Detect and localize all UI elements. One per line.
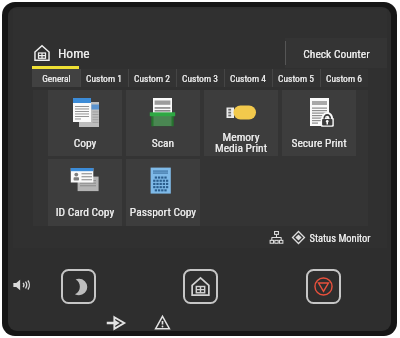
staticText: Copy	[48, 136, 122, 149]
staticText: Passport Copy	[126, 205, 200, 218]
button[interactable]: Passport Copy	[126, 159, 200, 226]
button[interactable]: Memory Media Print	[204, 90, 278, 156]
button[interactable]: Status Monitor	[292, 231, 387, 244]
staticText: Memory Media Print	[204, 130, 278, 155]
button[interactable]: Home	[183, 269, 218, 304]
button[interactable]: Custom 3	[176, 69, 224, 87]
staticText: Check Counter	[303, 47, 370, 60]
staticText: Scan	[126, 136, 200, 149]
button[interactable]: Copy	[48, 90, 122, 156]
button[interactable]: Custom 1	[80, 69, 128, 87]
staticText: ID Card Copy	[48, 205, 122, 218]
staticText: Custom 6	[326, 73, 362, 84]
button[interactable]: Custom 5	[272, 69, 320, 87]
button[interactable]: Custom 6	[320, 69, 368, 87]
button[interactable]: Custom 4	[224, 69, 272, 87]
button[interactable]: Energy Saver	[61, 269, 96, 304]
staticText: General	[42, 73, 71, 84]
button[interactable]: Secure Print	[282, 90, 356, 156]
other: Volume	[12, 275, 31, 294]
staticText: Custom 2	[134, 73, 170, 84]
staticText: Custom 4	[230, 73, 266, 84]
button[interactable]: Stop	[306, 269, 341, 304]
button[interactable]: Custom 2	[128, 69, 176, 87]
staticText: Custom 1	[86, 73, 122, 84]
button[interactable]: Check Counter	[285, 38, 387, 68]
staticText: Custom 3	[182, 73, 218, 84]
button[interactable]: General	[32, 69, 80, 87]
button[interactable]: Network status	[265, 226, 287, 248]
button[interactable]: ID Card Copy	[48, 159, 122, 226]
staticText: Custom 5	[278, 73, 314, 84]
staticText: Status Monitor	[309, 232, 371, 244]
staticText: Home	[58, 45, 90, 61]
button[interactable]: Scan	[126, 90, 200, 156]
button[interactable]: Home	[13, 38, 153, 68]
staticText: Secure Print	[282, 136, 356, 149]
